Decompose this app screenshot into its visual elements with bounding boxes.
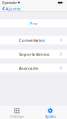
button[interactable]: Acerca de <box>0 64 67 72</box>
button[interactable]: Ajustes <box>33 105 67 119</box>
button[interactable]: Ajustes <box>0 5 24 12</box>
staticText: Catálogo <box>10 114 24 119</box>
staticText: Ajustes <box>45 114 55 119</box>
button[interactable]: Soporte técnico <box>0 50 67 58</box>
staticText: Acerca de <box>19 65 38 71</box>
staticText: Soporte técnico <box>19 51 50 57</box>
staticText: Comentarios <box>19 37 45 43</box>
staticText: Pro <box>29 20 37 26</box>
button[interactable]: Comentarios <box>0 36 67 44</box>
button[interactable]: Pro <box>0 19 67 27</box>
staticText: Ajustes <box>6 6 21 11</box>
staticText: Operador <box>2 0 17 5</box>
button[interactable]: Catálogo <box>0 105 33 119</box>
